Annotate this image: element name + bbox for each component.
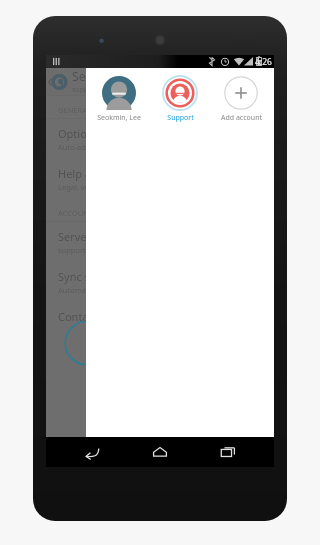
staticText: support@9folders.com xyxy=(58,245,139,255)
button[interactable]: Options xyxy=(46,119,274,159)
button[interactable]: Refresh xyxy=(214,68,244,95)
staticText: 4:26 xyxy=(255,56,272,68)
button[interactable]: Recent apps xyxy=(206,437,250,467)
staticText: Help & feedback xyxy=(58,166,143,181)
staticText: GENERAL xyxy=(58,105,91,115)
staticText: Automatic, schedule xyxy=(58,285,130,295)
button[interactable]: Home xyxy=(138,437,182,467)
staticText: Support xyxy=(167,113,194,123)
button[interactable]: Back xyxy=(70,437,114,467)
button[interactable]: Sync settings xyxy=(46,262,274,302)
staticText: Auto-advance, Conversation xyxy=(58,142,158,152)
button[interactable]: Seokmin, Lee xyxy=(91,74,147,125)
button[interactable]: Add account xyxy=(213,74,269,125)
staticText: Server settings xyxy=(58,229,136,244)
staticText: Contacts xyxy=(58,309,104,324)
staticText: support@9folders.com xyxy=(72,85,148,95)
staticText: ACCOUNTS xyxy=(58,208,98,218)
staticText: Sync settings xyxy=(58,269,126,284)
staticText: Settings xyxy=(72,68,120,85)
staticText: Add account xyxy=(221,113,262,123)
button[interactable]: Server settings xyxy=(46,222,274,262)
staticText: Seokmin, Lee xyxy=(97,113,141,123)
button[interactable]: More options xyxy=(244,68,274,95)
button[interactable]: Navigate up xyxy=(46,68,66,95)
staticText: Legal, version information xyxy=(58,182,151,192)
button[interactable]: Support xyxy=(152,74,208,125)
button[interactable]: Contacts xyxy=(46,302,274,331)
staticText: Options xyxy=(58,126,99,141)
button[interactable]: Help & feedback xyxy=(46,159,274,199)
